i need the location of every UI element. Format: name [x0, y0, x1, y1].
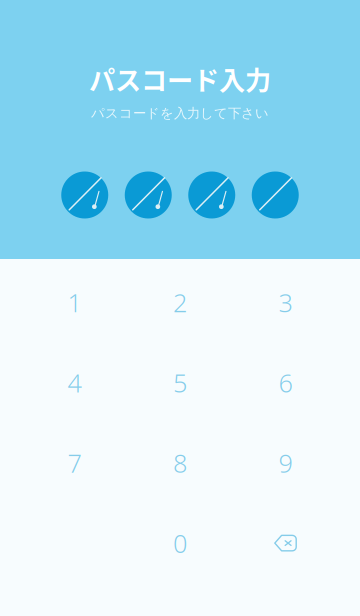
- staticText: 6: [278, 366, 292, 399]
- button[interactable]: 4: [22, 343, 127, 423]
- button[interactable]: 6: [233, 343, 338, 423]
- staticText: 4: [67, 366, 81, 399]
- staticText: 1: [67, 286, 81, 319]
- staticText: 3: [278, 286, 292, 319]
- button[interactable]: 3: [233, 262, 338, 343]
- button[interactable]: 7: [22, 423, 127, 503]
- staticText: 9: [278, 446, 292, 480]
- staticText: 7: [67, 446, 81, 480]
- staticText: 5: [173, 366, 187, 399]
- staticText: パスコードを入力して下さい: [91, 105, 269, 121]
- staticText: 8: [173, 446, 187, 480]
- button[interactable]: Delete: [233, 503, 338, 583]
- button[interactable]: 0: [127, 503, 233, 583]
- button[interactable]: 1: [22, 262, 127, 343]
- button[interactable]: 2: [127, 262, 233, 343]
- staticText: 2: [173, 286, 187, 319]
- button[interactable]: 5: [127, 343, 233, 423]
- staticText: パスコード入力: [89, 60, 271, 98]
- button[interactable]: 9: [233, 423, 338, 503]
- button[interactable]: 8: [127, 423, 233, 503]
- staticText: 0: [173, 526, 187, 560]
